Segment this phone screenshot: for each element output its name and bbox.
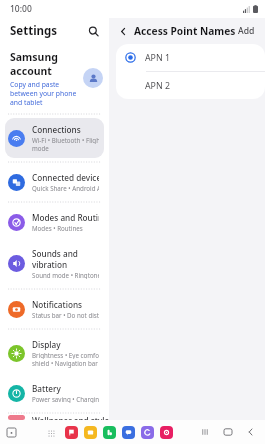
button[interactable]: App 0	[65, 426, 78, 439]
staticText: Display	[32, 339, 61, 350]
staticText: account	[10, 64, 52, 78]
button[interactable]: Connected devices	[5, 166, 104, 198]
button[interactable]: App 1	[84, 426, 97, 439]
staticText: Notifications	[32, 299, 82, 310]
button[interactable]: Notifications	[5, 293, 104, 325]
staticText: Wallpaper and style	[32, 415, 109, 420]
staticText: Quick Share • Android Auto	[32, 184, 99, 192]
staticText: Power saving • Charging	[32, 395, 99, 403]
staticText: Status bar • Do not disturb	[32, 311, 99, 319]
button[interactable]: Samsung	[0, 44, 109, 112]
staticText: Connected devices	[32, 172, 99, 183]
button[interactable]: APN 2	[116, 72, 265, 99]
button[interactable]: Search	[83, 21, 103, 41]
button[interactable]: Sounds and	[5, 242, 104, 285]
staticText: Sound mode • Ringtone	[32, 271, 99, 279]
staticText: shield • Navigation bar	[32, 359, 98, 367]
button[interactable]: Battery	[5, 377, 104, 409]
staticText: vibration	[32, 259, 68, 270]
button[interactable]: APN 1	[116, 44, 265, 71]
staticText: Samsung	[10, 50, 58, 64]
staticText: and tablet	[10, 98, 43, 107]
button[interactable]: Add	[236, 25, 257, 37]
staticText: Copy and paste	[10, 80, 60, 89]
staticText: Settings	[10, 23, 58, 39]
staticText: APN 1	[145, 52, 170, 64]
staticText: Access Point Names	[134, 24, 236, 38]
staticText: Wi-Fi • Bluetooth • Flight	[32, 136, 99, 144]
staticText: mode	[32, 144, 49, 152]
button[interactable]: Wallpaper and style	[0, 415, 109, 420]
staticText: APN 2	[145, 80, 170, 92]
staticText: Modes • Routines	[32, 224, 83, 232]
button[interactable]: Back	[115, 23, 131, 39]
button[interactable]: Recent apps panel	[4, 425, 18, 439]
button[interactable]: App 4	[141, 426, 154, 439]
staticText: Battery	[32, 383, 61, 394]
button[interactable]: Back	[243, 424, 259, 440]
staticText: Modes and Routines	[32, 212, 99, 223]
button[interactable]: App 5	[160, 426, 173, 439]
staticText: Add	[238, 25, 255, 37]
staticText: Sounds and	[32, 248, 78, 259]
staticText: Connections	[32, 124, 81, 135]
button[interactable]: Connections	[5, 118, 104, 158]
button[interactable]: Home	[220, 424, 236, 440]
button[interactable]: All apps	[45, 427, 57, 439]
staticText: between your phone	[10, 89, 77, 98]
button[interactable]: App 2	[103, 426, 116, 439]
button[interactable]: App 3	[122, 426, 135, 439]
button[interactable]: Recents	[197, 424, 213, 440]
button[interactable]: Modes and Routines	[5, 206, 104, 238]
staticText: 10:00	[10, 3, 32, 15]
button[interactable]: Display	[5, 333, 104, 373]
staticText: Brightness • Eye comfort	[32, 351, 99, 359]
